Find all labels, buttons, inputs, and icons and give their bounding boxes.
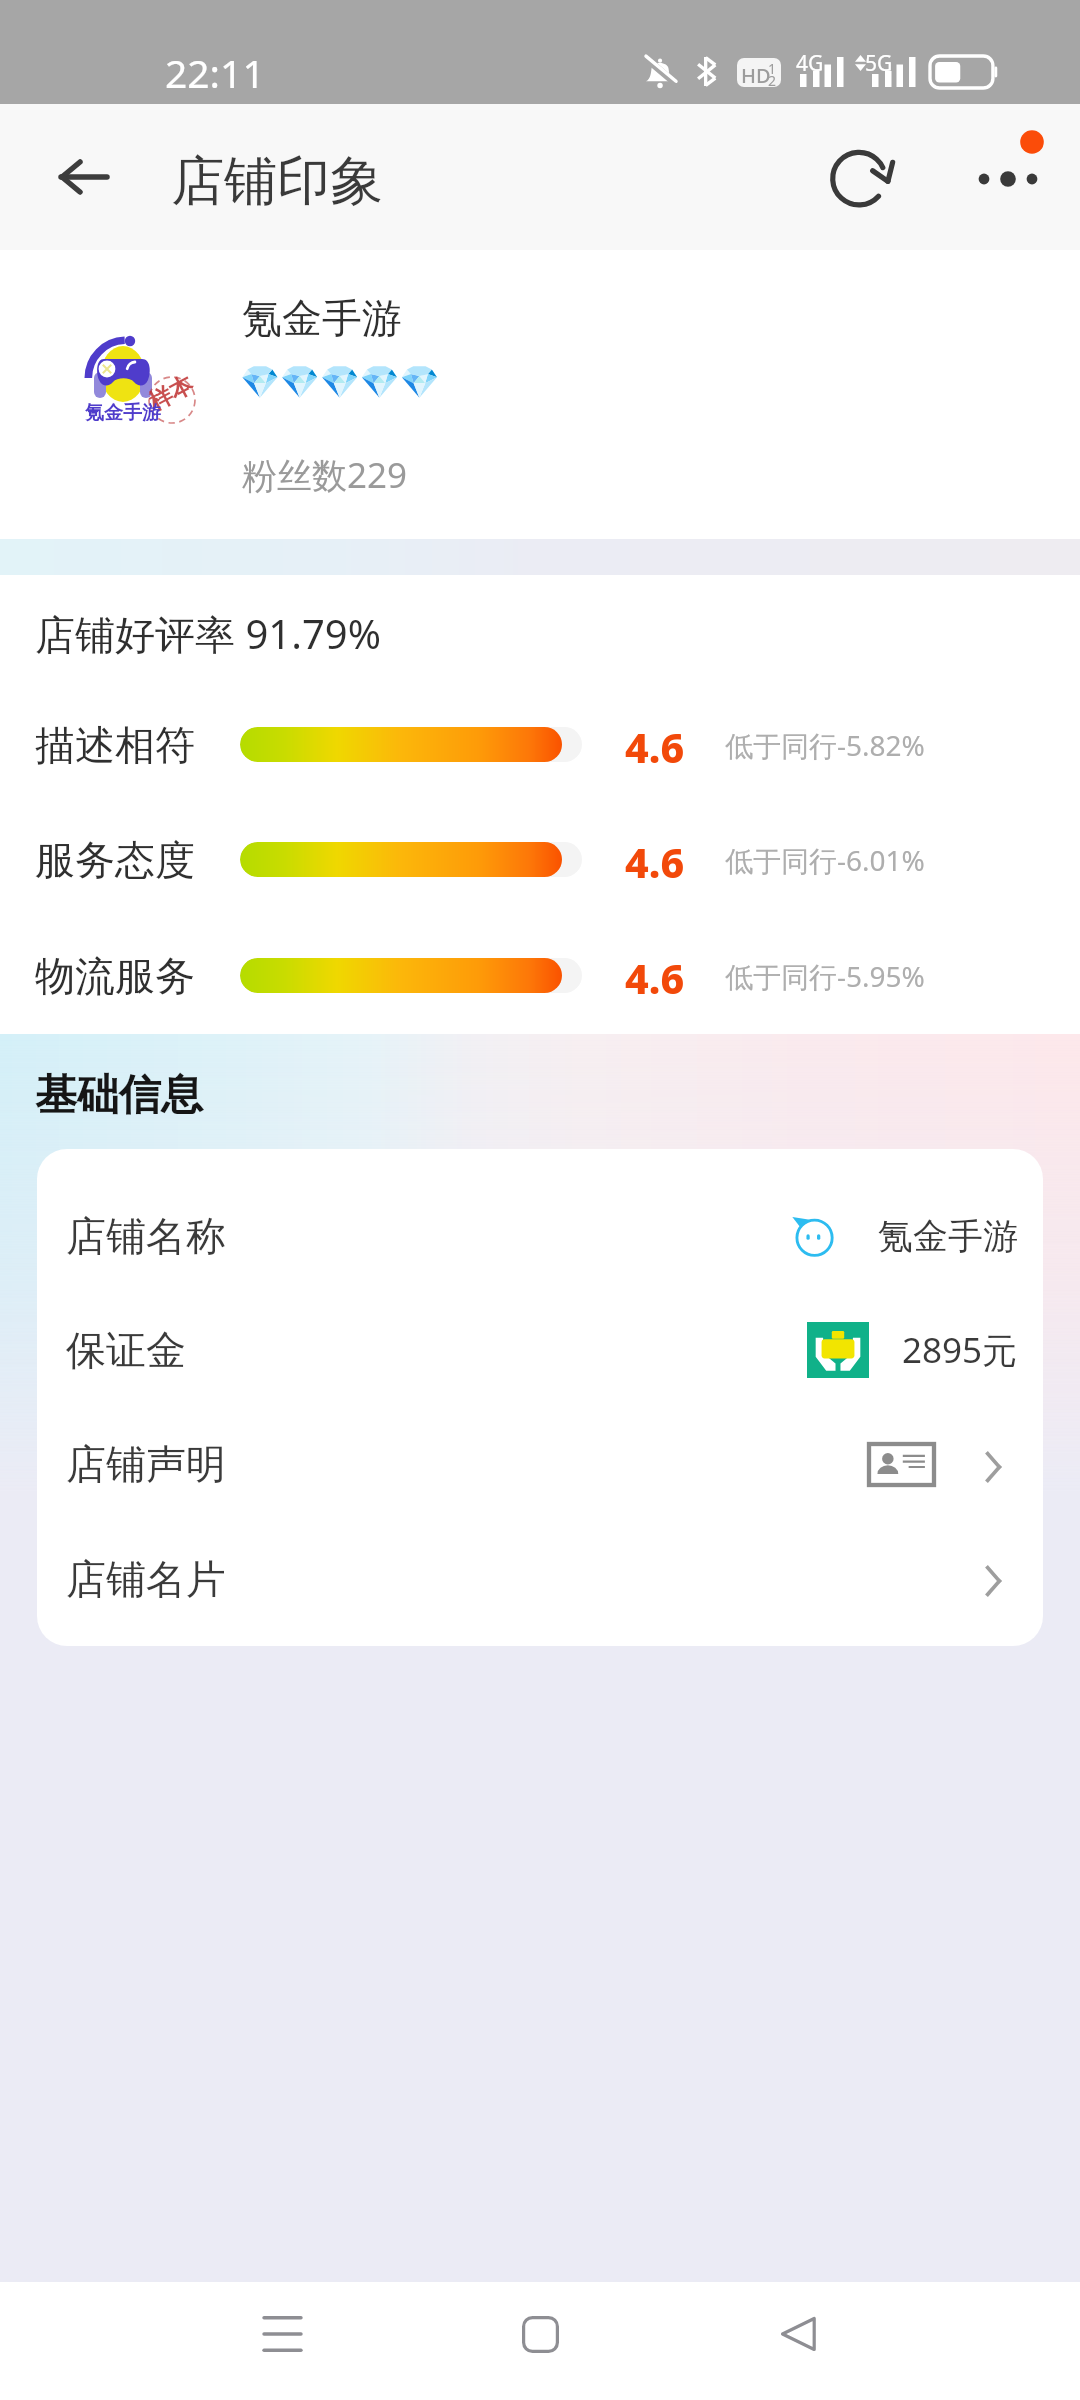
staticText: 氪金手游 [242, 293, 402, 343]
staticText: 💎💎💎💎💎 [240, 363, 440, 401]
staticText: 4G [796, 49, 824, 78]
staticText: 店铺声明 [66, 1439, 226, 1489]
staticText: 氪金手游 [878, 1214, 1018, 1258]
button[interactable]: Refresh [799, 118, 919, 238]
button[interactable]: 店铺名称 [37, 1179, 1043, 1293]
staticText: 2895元 [902, 1326, 1018, 1374]
staticText: 5G [865, 49, 893, 78]
button[interactable]: Back [24, 117, 144, 237]
staticText: 4.6 [625, 950, 685, 1006]
staticText: 低于同行-5.82% [725, 726, 925, 764]
staticText: 2 [768, 71, 777, 87]
staticText: 物流服务 [35, 951, 195, 1001]
staticText: HD [741, 62, 771, 87]
staticText: 4.6 [625, 719, 685, 775]
staticText: 店铺印象 [171, 148, 383, 215]
button[interactable]: 保证金 [37, 1293, 1043, 1407]
button[interactable]: Back [738, 2282, 858, 2400]
button[interactable]: 店铺名片 [37, 1522, 1043, 1636]
staticText: 样本 [144, 370, 198, 417]
staticText: 服务态度 [35, 835, 195, 885]
staticText: 22:11 [165, 46, 265, 99]
staticText: 4.6 [625, 834, 685, 890]
staticText: 店铺名称 [66, 1211, 226, 1261]
button[interactable]: More options [940, 110, 1070, 244]
staticText: 粉丝数229 [242, 451, 408, 499]
staticText: 店铺好评率 91.79% [35, 606, 381, 661]
staticText: 店铺名片 [66, 1554, 226, 1604]
staticText: 低于同行-6.01% [725, 841, 925, 879]
staticText: 基础信息 [35, 1069, 203, 1122]
button[interactable]: 店铺声明 [37, 1407, 1043, 1521]
staticText: 描述相符 [35, 720, 195, 770]
staticText: 氪金手游 [85, 401, 161, 425]
staticText: 1 [768, 59, 777, 78]
button[interactable]: Home [480, 2282, 600, 2400]
staticText: 低于同行-5.95% [725, 957, 925, 995]
staticText: 保证金 [66, 1325, 186, 1375]
button[interactable]: Recent apps [222, 2282, 342, 2400]
